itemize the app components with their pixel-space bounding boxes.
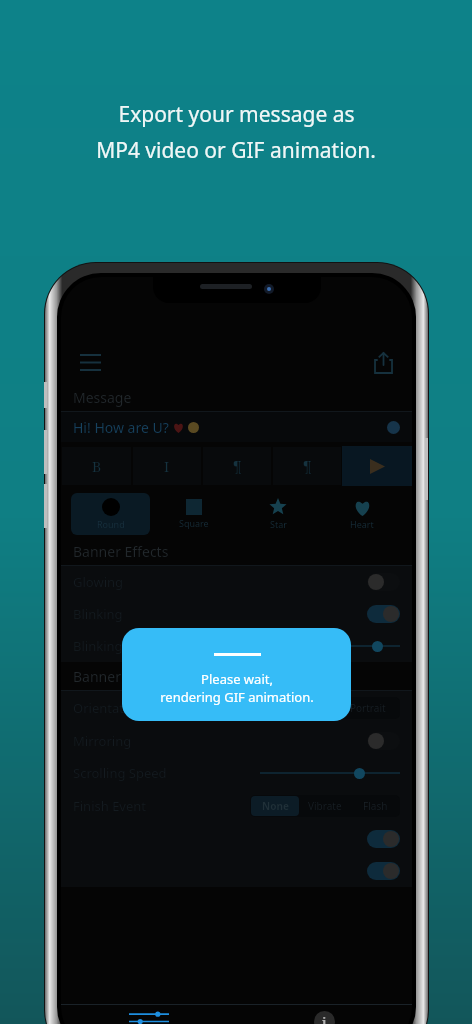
button[interactable]: Flash — [351, 796, 399, 816]
staticText: i — [322, 1013, 327, 1024]
staticText: Export your message as — [118, 100, 355, 129]
staticText: Round — [97, 518, 125, 530]
button[interactable]: Star — [238, 493, 318, 535]
button[interactable]: i — [236, 1005, 412, 1024]
staticText: I — [164, 457, 170, 476]
staticText: Banner Effects — [73, 542, 169, 561]
button[interactable]: Vibrate — [301, 796, 349, 816]
staticText: MP4 video or GIF animation. — [96, 136, 376, 165]
staticText: Vibrate — [308, 799, 342, 813]
button[interactable]: Blinking Speed — [61, 630, 412, 662]
button[interactable]: ¶ — [203, 447, 271, 485]
staticText: Blinking — [73, 605, 123, 623]
staticText: ¶ — [303, 457, 312, 476]
staticText: Star — [270, 518, 287, 530]
staticText: Flash — [363, 799, 388, 813]
button[interactable]: Landscape — [273, 698, 335, 718]
button[interactable]: Square — [154, 493, 234, 535]
staticText: ¶ — [233, 457, 242, 476]
button[interactable]: Round — [71, 493, 150, 535]
staticText: Glowing — [73, 573, 124, 591]
staticText: Scrolling Speed — [73, 764, 167, 782]
button[interactable]: Portrait — [337, 698, 399, 718]
button[interactable]: Glowing — [61, 566, 412, 598]
staticText: Square — [179, 517, 209, 529]
staticText: Mirroring — [73, 732, 132, 750]
staticText: B — [92, 457, 102, 476]
button[interactable]: Clear — [387, 421, 400, 434]
staticText: Portrait — [350, 701, 386, 715]
button[interactable]: Share — [366, 345, 400, 379]
staticText: Finish Event — [73, 797, 147, 815]
staticText: Heart — [350, 518, 374, 530]
staticText: Orientation — [73, 699, 144, 717]
staticText: None — [262, 799, 289, 813]
button[interactable]: B — [62, 447, 131, 485]
button[interactable]: Heart — [322, 493, 402, 535]
button[interactable]: Mirroring — [61, 725, 412, 757]
staticText: Hi! How are U? — [73, 418, 173, 437]
staticText: Please wait, — [201, 670, 273, 688]
button[interactable]: Banner Editor — [61, 1005, 236, 1024]
staticText: Blinking Speed — [73, 637, 164, 655]
button[interactable]: Please wait, — [122, 628, 351, 721]
button[interactable]: Play — [342, 446, 412, 486]
button[interactable]: Blinking — [61, 598, 412, 630]
staticText: Banner Controls — [73, 667, 180, 686]
button[interactable]: Hi! How are U? — [61, 412, 412, 442]
button[interactable]: Menu — [73, 345, 107, 379]
button[interactable]: Scrolling Speed — [61, 757, 412, 789]
staticText: Landscape — [278, 701, 331, 715]
staticText: Message — [73, 388, 132, 407]
button[interactable]: ¶ — [273, 447, 341, 485]
button[interactable] — [61, 855, 412, 887]
button[interactable]: None — [251, 796, 299, 816]
button[interactable]: I — [133, 447, 201, 485]
staticText: rendering GIF animation. — [160, 688, 314, 706]
button[interactable] — [61, 823, 412, 855]
